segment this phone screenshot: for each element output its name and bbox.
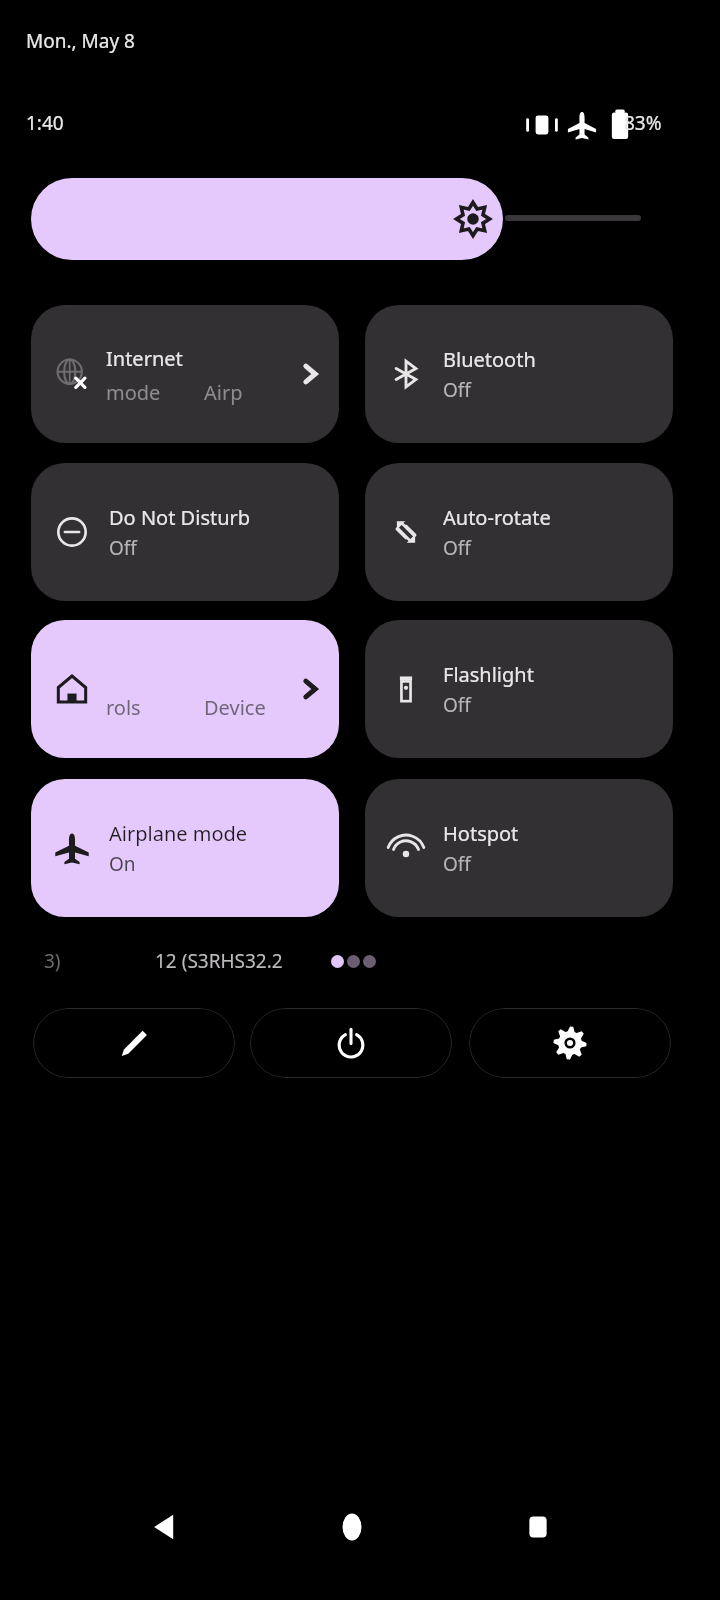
staticText: 3) — [44, 948, 61, 974]
staticText: Off — [443, 377, 471, 403]
staticText: Auto-rotate — [443, 504, 551, 531]
button[interactable]: Brightness — [31, 178, 503, 260]
button[interactable]: Do Not Disturb — [31, 463, 339, 601]
staticText: Airplane mode — [109, 820, 248, 847]
button[interactable]: Airplane mode — [31, 779, 339, 917]
button[interactable]: Auto-rotate — [365, 463, 673, 601]
staticText: Off — [109, 535, 137, 561]
button[interactable]: Home — [315, 1490, 389, 1564]
staticText: mode — [106, 379, 161, 406]
button[interactable]: Flashlight — [365, 620, 673, 758]
staticText: Off — [443, 851, 471, 877]
staticText: rols — [106, 694, 141, 721]
button[interactable]: Hotspot — [365, 779, 673, 917]
button[interactable]: Power — [250, 1008, 452, 1078]
button[interactable]: Settings — [469, 1008, 671, 1078]
button[interactable]: Back — [128, 1490, 202, 1564]
staticText: 12 (S3RHS32.2 — [155, 948, 283, 974]
staticText: Hotspot — [443, 820, 519, 847]
button[interactable]: Edit tiles — [33, 1008, 235, 1078]
button[interactable]: Internet — [31, 305, 339, 443]
staticText: On — [109, 851, 136, 877]
staticText: Airp — [204, 379, 243, 406]
staticText: Bluetooth — [443, 346, 536, 373]
staticText: 83% — [624, 110, 662, 136]
staticText: Off — [443, 692, 471, 718]
staticText: Device — [204, 694, 266, 721]
staticText: Mon., May 8 — [26, 28, 135, 54]
staticText: Do Not Disturb — [109, 504, 251, 531]
staticText: Flashlight — [443, 661, 534, 688]
staticText: 1:40 — [26, 110, 64, 136]
staticText: Internet — [106, 345, 183, 372]
staticText: Off — [443, 535, 471, 561]
button[interactable]: Recents — [501, 1490, 575, 1564]
button[interactable]: Device controls — [31, 620, 339, 758]
button[interactable]: Bluetooth — [365, 305, 673, 443]
